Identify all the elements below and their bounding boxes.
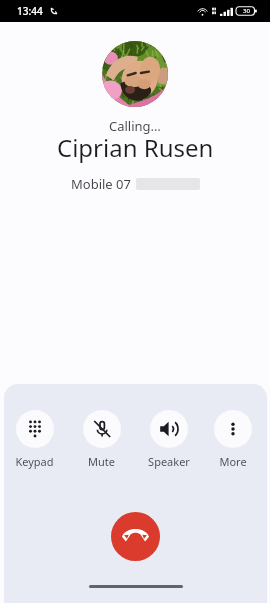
- button[interactable]: Speaker: [135, 410, 202, 469]
- staticText: 13:44: [17, 4, 43, 18]
- staticText: Keypad: [15, 454, 54, 469]
- staticText: Ciprian Rusen: [57, 131, 214, 164]
- button[interactable]: Keypad: [4, 410, 68, 469]
- staticText: Speaker: [148, 454, 190, 469]
- button[interactable]: More: [202, 410, 264, 469]
- staticText: More: [219, 454, 247, 469]
- staticText: Mobile 07: [71, 175, 131, 193]
- staticText: 30: [243, 7, 250, 15]
- button[interactable]: Mute: [68, 410, 135, 469]
- staticText: Mute: [88, 454, 115, 469]
- button[interactable]: End call: [111, 512, 160, 561]
- staticText: Calling…: [109, 117, 161, 135]
